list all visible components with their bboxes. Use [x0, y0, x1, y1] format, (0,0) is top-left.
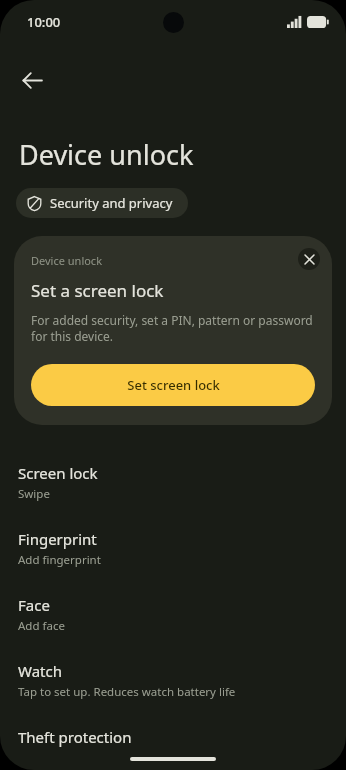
button[interactable]: Fingerprint: [0, 519, 346, 585]
staticText: Face: [18, 595, 50, 615]
button[interactable]: Screen lock: [0, 453, 346, 519]
button[interactable]: Dismiss: [298, 248, 320, 270]
button[interactable]: Face: [0, 585, 346, 651]
staticText: Add face: [18, 618, 65, 634]
staticText: Theft protection: [18, 727, 132, 747]
staticText: For added security, set a PIN, pattern o…: [31, 312, 315, 345]
button[interactable]: Theft protection: [0, 717, 346, 770]
staticText: Screen lock: [18, 463, 98, 483]
staticText: Fingerprint: [18, 529, 97, 549]
button[interactable]: Back: [8, 56, 56, 104]
staticText: Add fingerprint: [18, 552, 101, 568]
staticText: Set a screen lock: [31, 279, 164, 302]
button[interactable]: Security and privacy: [16, 188, 188, 218]
staticText: Tap to set up. Reduces watch battery lif…: [18, 684, 236, 700]
staticText: Swipe: [18, 486, 50, 502]
staticText: Security and privacy: [50, 194, 173, 212]
staticText: Watch: [18, 661, 62, 681]
staticText: Device unlock: [31, 253, 103, 268]
button[interactable]: Watch: [0, 651, 346, 717]
button[interactable]: Set screen lock: [31, 364, 315, 406]
staticText: Device unlock: [19, 136, 194, 173]
staticText: Set screen lock: [127, 376, 220, 394]
staticText: 10:00: [27, 13, 61, 31]
